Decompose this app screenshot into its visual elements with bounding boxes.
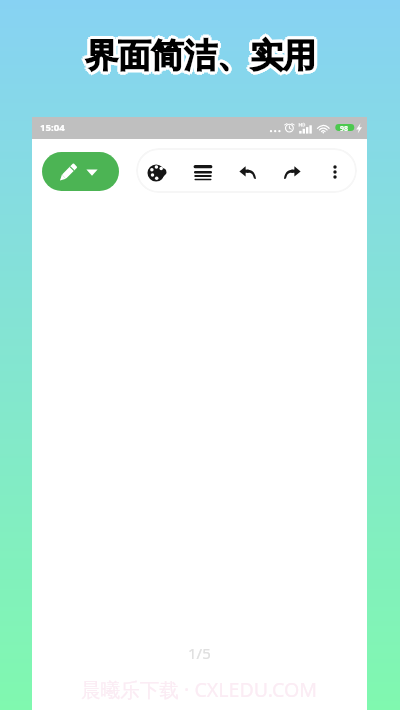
button[interactable]: Draw tool: [42, 152, 119, 191]
staticText: 界面简洁、实用: [85, 32, 316, 74]
staticText: 界面简洁、实用: [82, 35, 313, 77]
staticText: 界面简洁、实用: [87, 37, 318, 79]
staticText: 15:04: [40, 121, 65, 134]
staticText: 98: [340, 124, 349, 134]
staticText: 界面简洁、实用: [83, 37, 314, 79]
button[interactable]: Undo: [233, 157, 263, 187]
staticText: 界面简洁、实用: [83, 33, 314, 75]
staticText: 1/5: [188, 643, 211, 663]
staticText: 界面简洁、实用: [85, 38, 316, 80]
button[interactable]: More options: [320, 157, 350, 187]
button[interactable]: Colour palette: [142, 158, 172, 188]
button[interactable]: Redo: [277, 157, 307, 187]
staticText: 界面简洁、实用: [85, 35, 316, 77]
staticText: 晨曦乐下载 · CXLEDU.COM: [81, 676, 318, 703]
button[interactable]: Text format: [188, 158, 218, 188]
staticText: 界面简洁、实用: [87, 33, 318, 75]
staticText: 界面简洁、实用: [88, 35, 319, 77]
